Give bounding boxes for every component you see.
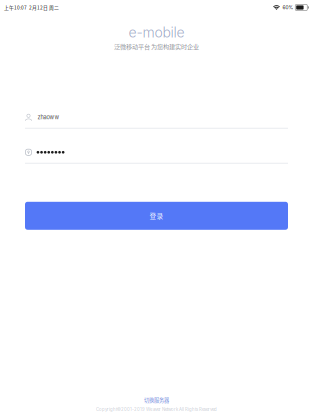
staticText: 登录 xyxy=(149,211,163,221)
staticText: zhaoww xyxy=(37,114,59,121)
button[interactable]: 登录 xyxy=(25,202,288,230)
button[interactable]: 切换服务器 xyxy=(136,394,177,406)
staticText: 上午10:07 2月12日 周二 xyxy=(4,4,59,11)
staticText: 泛微移动平台 为您构建实时企业 xyxy=(114,42,199,51)
staticText: Copyright©2001-2019 Weaver Network All R… xyxy=(96,407,217,412)
staticText: 60% xyxy=(282,5,293,10)
staticText: e-mobile xyxy=(128,24,184,41)
staticText: 切换服务器 xyxy=(144,396,169,404)
